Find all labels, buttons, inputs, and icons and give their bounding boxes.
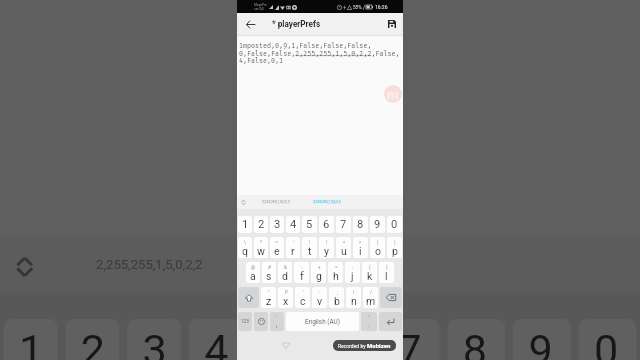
- button[interactable]: ;: [329, 287, 344, 308]
- staticText: \: [244, 240, 246, 245]
- staticText: Mobizen: [367, 342, 391, 349]
- staticText: y: [324, 245, 329, 257]
- button[interactable]: 3: [127, 319, 181, 360]
- button[interactable]: ": [261, 287, 276, 308]
- button[interactable]: 2,255,255,1,5,0,2,2: [247, 238, 444, 292]
- button[interactable]: 1: [238, 216, 252, 233]
- button[interactable]: ': [286, 237, 300, 258]
- button[interactable]: \: [238, 237, 252, 258]
- staticText: =: [335, 265, 338, 270]
- button[interactable]: -: [294, 262, 309, 283]
- staticText: ): [386, 265, 388, 270]
- staticText: 7: [397, 327, 424, 360]
- button[interactable]: +: [311, 262, 326, 283]
- staticText: >: [359, 240, 362, 245]
- button[interactable]: Save: [381, 13, 403, 35]
- staticText: r: [291, 245, 295, 257]
- staticText: (: [369, 265, 371, 270]
- button[interactable]: 4: [286, 216, 300, 233]
- staticText: *: [260, 240, 262, 245]
- button[interactable]: 2: [65, 319, 119, 360]
- button[interactable]: (: [362, 262, 377, 283]
- button[interactable]: Comma: [270, 312, 284, 331]
- button[interactable]: 2,255,255,1,5,0,2,2: [250, 195, 301, 209]
- staticText: 4: [204, 327, 231, 360]
- staticText: j: [351, 270, 354, 282]
- staticText: m: [387, 87, 399, 102]
- button[interactable]: !: [346, 287, 361, 308]
- button[interactable]: 8: [353, 216, 368, 233]
- button[interactable]: -: [312, 287, 327, 308]
- staticText: ': [303, 290, 304, 295]
- button[interactable]: 0: [579, 319, 636, 360]
- staticText: ;: [337, 290, 338, 295]
- staticText: 0: [391, 218, 398, 231]
- staticText: @: [251, 265, 256, 270]
- button[interactable]: P: [278, 287, 293, 308]
- button[interactable]: 6: [316, 319, 374, 360]
- button[interactable]: 2: [254, 216, 268, 233]
- button[interactable]: ~: [270, 237, 284, 258]
- staticText: 4: [290, 218, 297, 231]
- button[interactable]: :: [345, 262, 360, 283]
- staticText: 2: [81, 327, 108, 360]
- staticText: c: [300, 295, 306, 307]
- button[interactable]: Back: [280, 340, 292, 352]
- button[interactable]: ': [295, 287, 310, 308]
- button[interactable]: Expand suggestions: [0, 238, 50, 292]
- staticText: k: [367, 270, 373, 282]
- staticText: 5: [266, 327, 293, 360]
- button[interactable]: *: [254, 237, 268, 258]
- button[interactable]: Enter: [379, 312, 402, 331]
- button[interactable]: @: [246, 262, 260, 283]
- button[interactable]: 9: [370, 216, 385, 233]
- button[interactable]: 6: [319, 216, 334, 233]
- button[interactable]: Symbols: [238, 312, 252, 331]
- button[interactable]: 8: [447, 319, 505, 360]
- button[interactable]: #: [262, 262, 276, 283]
- staticText: ": [268, 290, 270, 295]
- staticText: d: [282, 270, 288, 282]
- staticText: English (AU): [305, 318, 340, 326]
- button[interactable]: Delete: [380, 287, 402, 308]
- button[interactable]: 7: [382, 319, 440, 360]
- button[interactable]: |: [319, 237, 334, 258]
- button[interactable]: 1: [3, 319, 57, 360]
- button[interactable]: English (AU): [286, 312, 359, 331]
- staticText: e: [274, 245, 280, 257]
- button[interactable]: (: [370, 237, 385, 258]
- staticText: Recorded by: [338, 343, 367, 349]
- button[interactable]: <: [336, 237, 351, 258]
- button[interactable]: &: [278, 262, 292, 283]
- button[interactable]: =: [328, 262, 343, 283]
- staticText: v: [317, 295, 323, 307]
- button[interactable]: >: [353, 237, 368, 258]
- button[interactable]: 5: [250, 319, 308, 360]
- button[interactable]: !: [302, 237, 317, 258]
- button[interactable]: 5: [302, 216, 317, 233]
- staticText: /: [370, 290, 372, 295]
- staticText: p: [392, 245, 398, 257]
- button[interactable]: /: [363, 287, 378, 308]
- button[interactable]: ): [379, 262, 394, 283]
- button[interactable]: 2,255,255,1,5,0,2,2: [50, 238, 247, 292]
- button[interactable]: ): [387, 237, 402, 258]
- button[interactable]: Shift: [238, 287, 259, 308]
- staticText: 123: [241, 319, 249, 324]
- button[interactable]: 7: [336, 216, 351, 233]
- button[interactable]: 0: [387, 216, 402, 233]
- staticText: !: [353, 290, 355, 295]
- button[interactable]: 3: [270, 216, 284, 233]
- button[interactable]: Navigate up: [237, 13, 264, 35]
- staticText: P: [285, 290, 288, 295]
- staticText: n: [351, 295, 357, 307]
- button[interactable]: Period: [361, 312, 377, 331]
- staticText: b: [334, 295, 340, 307]
- button[interactable]: 4: [189, 319, 243, 360]
- button[interactable]: Expand suggestions: [237, 195, 250, 209]
- button[interactable]: 9: [513, 319, 571, 360]
- button[interactable]: Emoji: [254, 312, 268, 331]
- button[interactable]: 2,255,255,1,5,0,2,2: [301, 195, 352, 209]
